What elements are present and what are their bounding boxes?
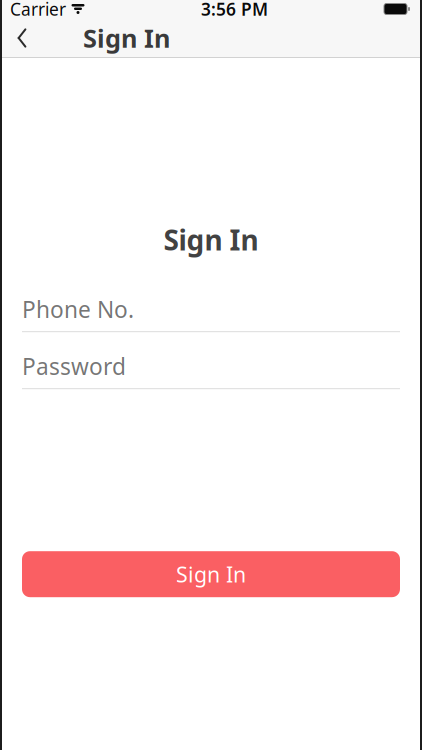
- staticText: Sign In: [176, 560, 246, 588]
- staticText: Carrier: [10, 0, 66, 20]
- button[interactable]: Back: [0, 18, 44, 58]
- staticText: Sign In: [83, 21, 170, 55]
- button[interactable]: Sign In: [22, 551, 400, 597]
- staticText: 3:56 PM: [201, 0, 268, 20]
- staticText: Phone No.: [22, 294, 134, 324]
- staticText: Password: [22, 351, 126, 381]
- staticText: Sign In: [163, 221, 258, 258]
